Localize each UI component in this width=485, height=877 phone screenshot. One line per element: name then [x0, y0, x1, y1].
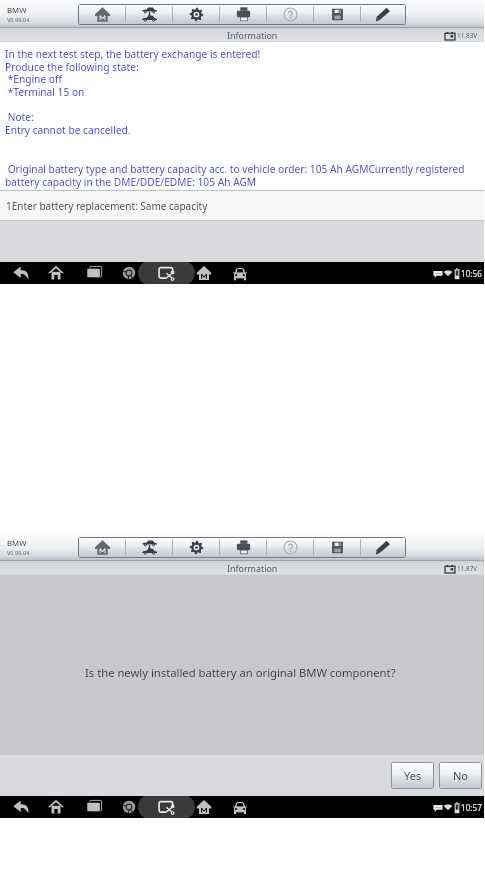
staticText: *Engine off	[5, 72, 62, 86]
staticText: Yes	[404, 768, 422, 783]
staticText: battery capacity in the DME/DDE/EDME: 10…	[5, 175, 257, 189]
staticText: V0.99.04	[7, 549, 30, 557]
button[interactable]: Home	[38, 796, 74, 818]
staticText: 10:57	[461, 802, 482, 813]
staticText: V0.99.04	[7, 16, 30, 24]
button[interactable]: Vehicle	[222, 262, 258, 284]
button[interactable]: Browser	[111, 262, 147, 284]
button[interactable]: Home	[79, 5, 126, 24]
button[interactable]: Diagnostics app	[186, 262, 222, 284]
button[interactable]: Screenshot	[148, 796, 184, 818]
button[interactable]: Home	[79, 538, 126, 557]
button[interactable]: 1Enter battery replacement: Same capacit…	[0, 191, 484, 220]
button[interactable]: Back	[3, 796, 39, 818]
button[interactable]: Save	[314, 5, 361, 24]
staticText: Produce the following state:	[5, 60, 139, 74]
button[interactable]: Diagnostics app	[186, 796, 222, 818]
button[interactable]: Screenshot	[148, 262, 184, 284]
button[interactable]: Browser	[111, 796, 147, 818]
staticText: BMW	[7, 5, 27, 16]
button[interactable]: Back	[3, 262, 39, 284]
button[interactable]: Help	[267, 5, 314, 24]
staticText: Note:	[5, 110, 34, 124]
staticText: 10:56	[461, 268, 482, 279]
staticText: 11.87V	[457, 564, 478, 573]
button[interactable]: Recent apps	[76, 262, 112, 284]
staticText: Original battery type and battery capaci…	[5, 162, 465, 176]
button[interactable]: Home	[38, 262, 74, 284]
button[interactable]: Vehicle	[222, 796, 258, 818]
button[interactable]: Help	[267, 538, 314, 557]
staticText: Information	[227, 562, 278, 574]
button[interactable]: Recent apps	[76, 796, 112, 818]
button[interactable]: Settings	[173, 5, 220, 24]
button[interactable]: Save	[314, 538, 361, 557]
button[interactable]: Vehicle selection	[126, 538, 173, 557]
button[interactable]: Vehicle selection	[126, 5, 173, 24]
button[interactable]: Edit	[361, 5, 405, 24]
staticText: Entry cannot be cancelled.	[5, 123, 131, 137]
staticText: 1Enter battery replacement: Same capacit…	[6, 199, 208, 213]
button[interactable]: No	[440, 763, 481, 788]
staticText: No	[453, 768, 469, 783]
staticText: In the next test step, the battery excha…	[5, 47, 261, 61]
button[interactable]: Yes	[392, 763, 433, 788]
button[interactable]: Settings	[173, 538, 220, 557]
button[interactable]: Print	[220, 5, 267, 24]
staticText: BMW	[7, 538, 27, 549]
button[interactable]: Print	[220, 538, 267, 557]
staticText: *Terminal 15 on	[5, 85, 85, 99]
staticText: Is the newly installed battery an origin…	[85, 665, 396, 680]
staticText: 11.83V	[457, 31, 478, 40]
staticText: Information	[227, 29, 278, 41]
button[interactable]: Edit	[361, 538, 405, 557]
